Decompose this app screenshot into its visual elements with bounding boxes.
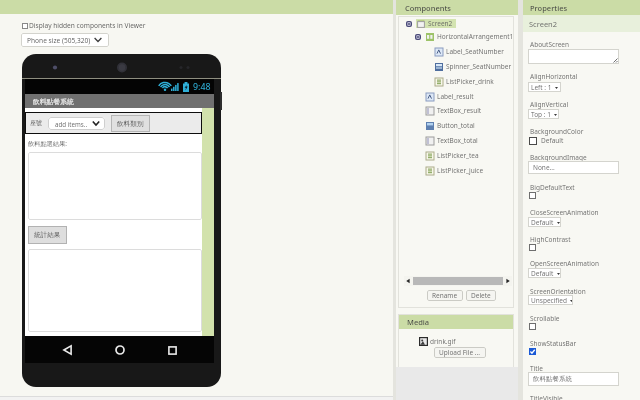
staticText: 座號 xyxy=(30,119,42,127)
staticText: Unspecified xyxy=(531,296,567,305)
button[interactable]: Unspecified xyxy=(528,295,573,305)
staticText: Default xyxy=(541,136,564,145)
button[interactable]: AboutScreen field xyxy=(528,49,619,64)
staticText: Properties xyxy=(530,3,568,13)
staticText: Components xyxy=(405,3,451,13)
staticText: Scrollable xyxy=(530,314,560,323)
staticText: 飲料類別 xyxy=(117,120,144,128)
staticText: Spinner_SeatNumber xyxy=(446,62,512,71)
staticText: BackgroundImage xyxy=(530,153,587,162)
staticText: ShowStatusBar xyxy=(530,339,577,348)
button[interactable]: Label_SeatNumber xyxy=(398,44,514,59)
button[interactable]: Default xyxy=(528,268,561,278)
staticText: Top : 1 xyxy=(531,110,551,119)
button[interactable] xyxy=(28,249,202,332)
button[interactable]: add items.. xyxy=(48,117,105,130)
button[interactable]: HorizontalArrangement1 xyxy=(398,29,514,44)
button[interactable]: Back xyxy=(56,339,78,361)
staticText: Label_result xyxy=(437,92,474,101)
staticText: Title xyxy=(530,364,543,373)
button[interactable]: Screen2 xyxy=(398,16,514,31)
staticText: Button_total xyxy=(437,121,475,130)
staticText: Screen2 xyxy=(529,19,558,29)
staticText: ScreenOrientation xyxy=(530,287,586,296)
button[interactable]: Top : 1 xyxy=(528,109,559,119)
staticText: AlignVertical xyxy=(530,100,569,109)
button[interactable]: Default xyxy=(529,136,564,145)
staticText: ListPicker_juice xyxy=(437,166,484,175)
staticText: 飲料點餐系統 xyxy=(33,97,74,106)
button[interactable]: TextBox_total xyxy=(398,133,514,148)
staticText: Display hidden components in Viewer xyxy=(29,21,146,30)
staticText: Media xyxy=(407,317,430,327)
staticText: Delete xyxy=(471,291,491,300)
button[interactable]: Display hidden components in Viewer xyxy=(22,21,146,30)
staticText: None... xyxy=(533,163,555,172)
button[interactable]: Label_result xyxy=(398,89,514,104)
button[interactable]: ListPicker_drink xyxy=(398,74,514,89)
staticText: BackgroundColor xyxy=(530,127,584,136)
button[interactable]: ListPicker_juice xyxy=(398,163,514,178)
button[interactable]: toggle xyxy=(529,323,536,330)
staticText: Label_SeatNumber xyxy=(446,47,504,56)
staticText: add items.. xyxy=(55,120,88,128)
staticText: ListPicker_tea xyxy=(437,151,479,160)
button[interactable]: Recents xyxy=(161,339,183,361)
button[interactable]: Phone size (505,320) xyxy=(21,33,109,47)
staticText: drink.gif xyxy=(430,337,456,346)
staticText: Left : 1 xyxy=(531,83,552,92)
staticText: AboutScreen xyxy=(530,40,570,49)
button[interactable]: None... xyxy=(528,161,619,174)
button[interactable] xyxy=(28,152,202,220)
staticText: 飲料點選結果: xyxy=(28,139,67,147)
button[interactable]: Home xyxy=(109,339,131,361)
staticText: BigDefaultText xyxy=(530,183,575,192)
staticText: HighContrast xyxy=(530,235,571,244)
staticText: ListPicker_drink xyxy=(446,77,494,86)
staticText: Screen2 xyxy=(428,19,453,28)
staticText: 統計結果 xyxy=(34,231,61,239)
button[interactable]: toggle xyxy=(529,244,536,251)
button[interactable]: Left : 1 xyxy=(528,82,561,92)
staticText: Default xyxy=(531,269,554,278)
button[interactable]: 座號 xyxy=(25,112,202,134)
button[interactable]: toggle xyxy=(529,192,536,199)
staticText: CloseScreenAnimation xyxy=(530,208,599,217)
staticText: HorizontalArrangement1 xyxy=(437,32,514,41)
staticText: Rename xyxy=(432,291,458,300)
button[interactable]: Rename xyxy=(427,290,463,301)
button[interactable]: Delete xyxy=(466,290,496,301)
button[interactable]: Button_total xyxy=(398,118,514,133)
button[interactable]: Default xyxy=(528,217,561,227)
staticText: TextBox_total xyxy=(437,136,478,145)
button[interactable]: Upload File ... xyxy=(434,347,486,358)
staticText: 飲料點餐系統 xyxy=(533,375,572,383)
staticText: TitleVisible xyxy=(530,394,563,400)
staticText: OpenScreenAnimation xyxy=(530,259,599,268)
button[interactable]: ShowStatusBar toggle xyxy=(529,348,536,355)
button[interactable]: 統計結果 xyxy=(28,226,67,244)
button[interactable]: TextBox_result xyxy=(398,103,514,118)
staticText: TextBox_result xyxy=(437,106,482,115)
button[interactable]: 飲料類別 xyxy=(111,115,150,132)
staticText: AlignHorizontal xyxy=(530,72,578,81)
staticText: Phone size (505,320) xyxy=(27,36,91,45)
button[interactable]: ListPicker_tea xyxy=(398,148,514,163)
button[interactable]: 飲料點餐系統 xyxy=(528,372,619,386)
button[interactable]: Spinner_SeatNumber xyxy=(398,59,514,74)
staticText: Upload File ... xyxy=(439,348,481,357)
staticText: 9:48 xyxy=(193,81,211,93)
staticText: Default xyxy=(531,218,554,227)
